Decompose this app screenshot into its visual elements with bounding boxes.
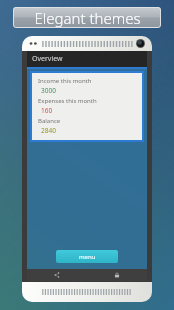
button[interactable]: Elegant themes [13,7,161,28]
staticText: Income this month [38,77,92,85]
staticText: Elegant themes [34,8,141,28]
staticText: menu [79,253,96,261]
staticText: Overview [32,54,63,64]
button[interactable]: Home [87,269,147,281]
button[interactable]: Overview [27,51,147,67]
button[interactable]: Income this month [32,73,142,140]
staticText: 160 [41,106,53,115]
staticText: Balance [38,117,61,125]
staticText: 2840 [41,126,56,135]
button[interactable]: Back [27,269,87,281]
staticText: Expenses this month [38,97,97,105]
staticText: 3000 [41,86,56,95]
button[interactable]: menu [56,250,118,263]
